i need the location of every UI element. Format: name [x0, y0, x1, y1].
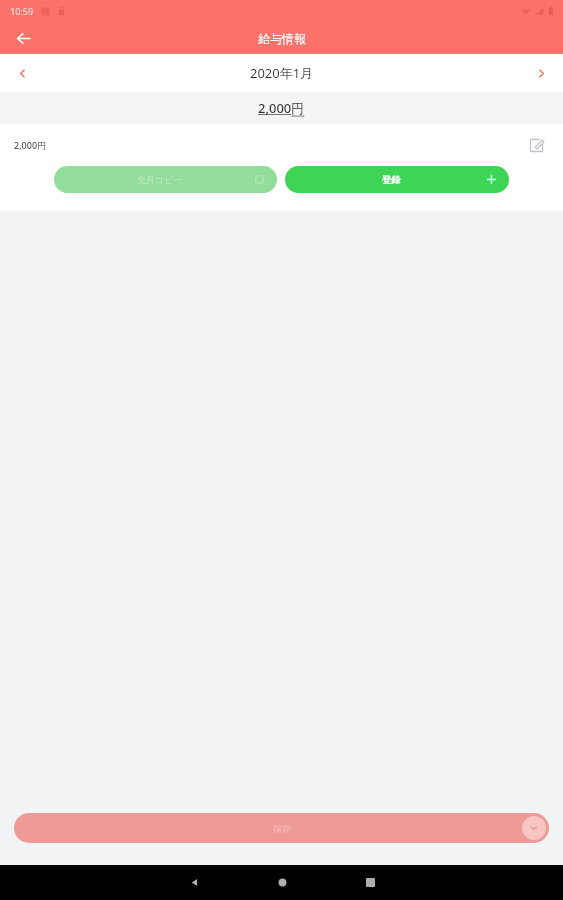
staticText: 2,000円: [258, 99, 305, 117]
staticText: 2,000円: [14, 139, 47, 151]
button[interactable]: 保存: [14, 813, 549, 843]
button[interactable]: Back: [6, 22, 40, 54]
button[interactable]: Recent apps: [348, 865, 392, 900]
button[interactable]: Back: [172, 865, 216, 900]
button[interactable]: Home: [260, 865, 304, 900]
staticText: 保存: [273, 823, 291, 834]
staticText: 登録: [382, 174, 400, 185]
staticText: 先月コピー: [137, 174, 183, 185]
button[interactable]: Previous month: [6, 57, 38, 89]
staticText: 10:59: [10, 5, 34, 17]
button[interactable]: 登録: [285, 166, 509, 193]
button[interactable]: Edit: [523, 132, 549, 158]
button[interactable]: 先月コピー: [54, 166, 277, 193]
staticText: 2020年1月: [250, 64, 314, 82]
button[interactable]: 2,000円: [0, 124, 563, 166]
button[interactable]: Next month: [525, 57, 557, 89]
staticText: 給与情報: [258, 31, 306, 46]
